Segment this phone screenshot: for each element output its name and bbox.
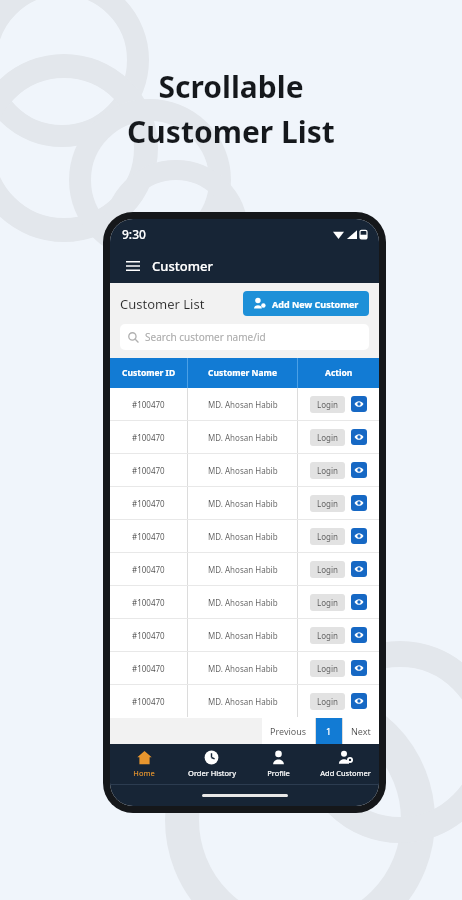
staticText: #100470: [132, 663, 165, 674]
staticText: Scrollable: [158, 66, 304, 107]
button[interactable]: Add New Customer: [243, 291, 369, 316]
staticText: MD. Ahosan Habib: [208, 531, 278, 542]
staticText: #100470: [132, 564, 165, 575]
staticText: MD. Ahosan Habib: [208, 432, 278, 443]
button[interactable]: View: [351, 495, 367, 511]
button[interactable]: View: [351, 429, 367, 445]
staticText: MD. Ahosan Habib: [208, 696, 278, 707]
staticText: MD. Ahosan Habib: [208, 663, 278, 674]
button[interactable]: #100470: [110, 421, 379, 453]
staticText: #100470: [132, 399, 165, 410]
staticText: Login: [317, 696, 338, 707]
staticText: Add New Customer: [272, 298, 359, 310]
staticText: Home: [133, 768, 155, 778]
button[interactable]: #100470: [110, 553, 379, 585]
staticText: Login: [317, 498, 338, 509]
staticText: Previous: [270, 725, 307, 737]
staticText: Search customer name/id: [145, 330, 266, 344]
staticText: Login: [317, 399, 338, 410]
button[interactable]: Order History: [178, 744, 245, 784]
button[interactable]: Next: [343, 718, 379, 744]
button[interactable]: #100470: [110, 685, 379, 717]
staticText: Add Customer: [320, 768, 371, 778]
button[interactable]: Login: [310, 396, 345, 413]
staticText: MD. Ahosan Habib: [208, 465, 278, 476]
button[interactable]: Previous: [262, 718, 315, 744]
button[interactable]: View: [351, 627, 367, 643]
button[interactable]: View: [351, 660, 367, 676]
staticText: Login: [317, 465, 338, 476]
staticText: Login: [317, 432, 338, 443]
staticText: Customer Name: [208, 367, 277, 379]
staticText: MD. Ahosan Habib: [208, 597, 278, 608]
button[interactable]: Login: [310, 561, 345, 578]
staticText: Login: [317, 630, 338, 641]
staticText: Customer List: [127, 111, 335, 152]
staticText: MD. Ahosan Habib: [208, 498, 278, 509]
staticText: Customer ID: [122, 367, 176, 379]
staticText: 9:30: [122, 226, 146, 242]
button[interactable]: #100470: [110, 454, 379, 486]
button[interactable]: Login: [310, 660, 345, 677]
button[interactable]: View: [351, 528, 367, 544]
button[interactable]: #100470: [110, 520, 379, 552]
button[interactable]: Login: [310, 627, 345, 644]
button[interactable]: View: [351, 594, 367, 610]
staticText: #100470: [132, 531, 165, 542]
staticText: MD. Ahosan Habib: [208, 564, 278, 575]
button[interactable]: Login: [310, 594, 345, 611]
button[interactable]: #100470: [110, 388, 379, 420]
button[interactable]: #100470: [110, 586, 379, 618]
button[interactable]: Login: [310, 495, 345, 512]
button[interactable]: View: [351, 693, 367, 709]
button[interactable]: Profile: [245, 744, 312, 784]
button[interactable]: View: [351, 396, 367, 412]
staticText: Customer: [152, 257, 213, 275]
button[interactable]: #100470: [110, 652, 379, 684]
staticText: Login: [317, 564, 338, 575]
button[interactable]: Login: [310, 462, 345, 479]
staticText: Login: [317, 663, 338, 674]
staticText: Customer List: [120, 295, 205, 313]
button[interactable]: 1: [316, 718, 342, 744]
button[interactable]: Search customer name/id: [120, 324, 369, 350]
button[interactable]: Home: [110, 744, 178, 784]
staticText: MD. Ahosan Habib: [208, 630, 278, 641]
button[interactable]: Login: [310, 693, 345, 710]
button[interactable]: View: [351, 561, 367, 577]
staticText: 1: [326, 725, 332, 737]
staticText: Action: [325, 367, 353, 379]
staticText: Login: [317, 531, 338, 542]
staticText: #100470: [132, 432, 165, 443]
button[interactable]: View: [351, 462, 367, 478]
staticText: Login: [317, 597, 338, 608]
button[interactable]: #100470: [110, 487, 379, 519]
button[interactable]: #100470: [110, 619, 379, 651]
button[interactable]: Add Customer: [312, 744, 379, 784]
staticText: MD. Ahosan Habib: [208, 399, 278, 410]
staticText: Order History: [188, 768, 236, 778]
staticText: Next: [351, 725, 371, 737]
staticText: #100470: [132, 597, 165, 608]
staticText: #100470: [132, 630, 165, 641]
button[interactable]: Login: [310, 429, 345, 446]
staticText: Profile: [267, 768, 290, 778]
button[interactable]: Menu: [122, 255, 144, 277]
staticText: #100470: [132, 498, 165, 509]
button[interactable]: Login: [310, 528, 345, 545]
staticText: #100470: [132, 465, 165, 476]
staticText: #100470: [132, 696, 165, 707]
